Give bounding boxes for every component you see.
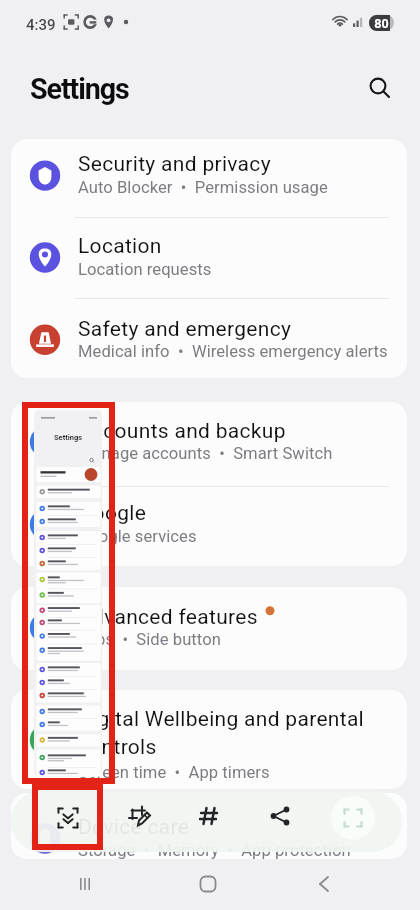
staticText: Security and privacy <box>78 152 271 177</box>
staticText: Auto Blocker • Permission usage <box>78 178 328 197</box>
button[interactable]: Home <box>186 862 230 906</box>
button[interactable]: Google <box>11 487 407 566</box>
staticText: Advanced features <box>78 605 258 630</box>
button[interactable]: Accounts and backup <box>11 402 407 487</box>
staticText: Storage • Memory • App protection <box>78 841 351 859</box>
staticText: controls <box>78 735 157 760</box>
staticText: Location <box>78 234 162 259</box>
staticText: Labs • Side button <box>78 630 221 649</box>
button[interactable]: Share <box>256 792 304 840</box>
button[interactable]: Recents <box>63 862 107 906</box>
button[interactable]: Digital Wellbeing and parental <box>11 690 407 789</box>
staticText: Google services <box>78 527 197 546</box>
button[interactable]: Device care <box>11 793 407 859</box>
staticText: Accounts and backup <box>78 419 286 444</box>
staticText: Medical info • Wireless emergency alerts <box>78 342 388 361</box>
button[interactable]: Settings <box>34 410 102 777</box>
button[interactable]: Back <box>302 862 346 906</box>
button[interactable]: Crop <box>331 796 375 840</box>
staticText: Screen time • App timers <box>78 763 270 782</box>
button[interactable]: Tags <box>185 792 233 840</box>
button[interactable]: Advanced features <box>11 587 407 670</box>
staticText: Settings <box>30 72 129 106</box>
staticText: Google <box>78 501 147 526</box>
button[interactable]: Search <box>356 64 400 108</box>
staticText: 80 <box>369 16 394 31</box>
staticText: 4:39 <box>26 16 56 34</box>
button[interactable]: Draw <box>116 792 164 840</box>
button[interactable]: Security and privacy <box>11 139 407 218</box>
button[interactable]: Safety and emergency <box>11 299 407 378</box>
button[interactable]: Location <box>11 218 407 299</box>
staticText: Digital Wellbeing and parental <box>78 707 365 732</box>
staticText: Manage accounts • Smart Switch <box>78 444 333 463</box>
staticText: Location requests <box>78 260 212 279</box>
button[interactable]: Smart select <box>44 794 92 842</box>
staticText: Settings <box>34 433 102 442</box>
staticText: Device care <box>78 815 190 840</box>
staticText: Safety and emergency <box>78 317 292 342</box>
